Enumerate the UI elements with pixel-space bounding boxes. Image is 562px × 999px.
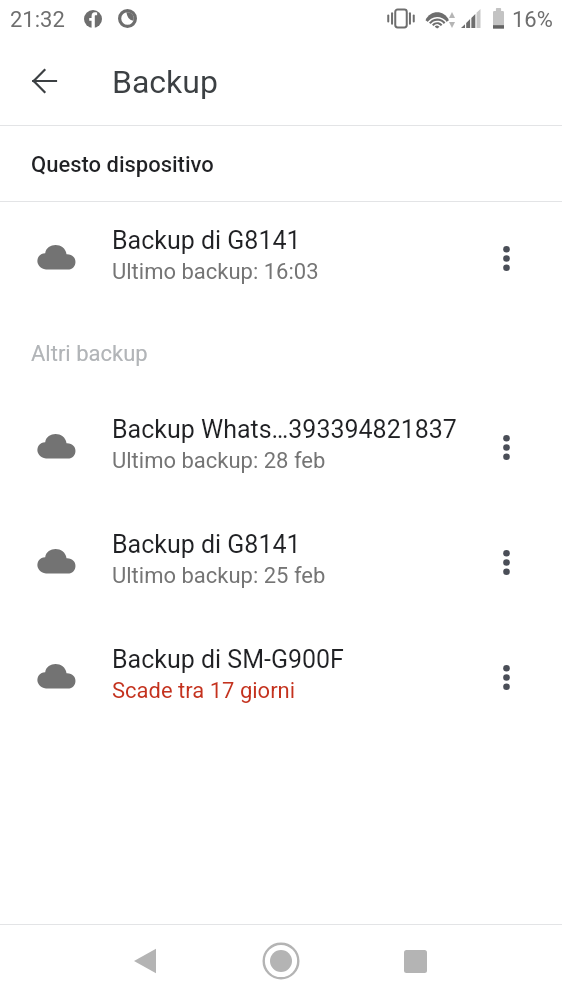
button[interactable]: Backup Whats…393394821837	[0, 392, 562, 507]
button[interactable]: Backup di G8141	[0, 203, 562, 318]
staticText: Ultimo backup: 16:03	[112, 259, 319, 285]
button[interactable]: Backup di SM-G900F	[0, 622, 562, 737]
button[interactable]: Back	[20, 57, 68, 105]
button[interactable]: Back	[117, 933, 173, 989]
button[interactable]: More options	[482, 641, 530, 715]
staticText: Backup Whats…393394821837	[112, 415, 457, 444]
button[interactable]: Recent apps	[387, 933, 443, 989]
staticText: Backup di G8141	[112, 530, 301, 559]
staticText: Altri backup	[31, 341, 148, 367]
staticText: Backup di G8141	[112, 226, 301, 255]
staticText: Backup di SM-G900F	[112, 645, 344, 674]
staticText: Backup	[112, 63, 218, 101]
staticText: 21:32	[10, 7, 65, 33]
staticText: Ultimo backup: 28 feb	[112, 448, 326, 474]
staticText: Questo dispositivo	[31, 152, 214, 178]
staticText: Ultimo backup: 25 feb	[112, 563, 326, 589]
button[interactable]: Home	[253, 933, 309, 989]
button[interactable]: More options	[482, 526, 530, 600]
button[interactable]: More options	[482, 411, 530, 485]
staticText: Scade tra 17 giorni	[112, 678, 296, 704]
button[interactable]: Backup di G8141	[0, 507, 562, 622]
button[interactable]: More options	[482, 222, 530, 296]
staticText: 16%	[512, 7, 553, 33]
